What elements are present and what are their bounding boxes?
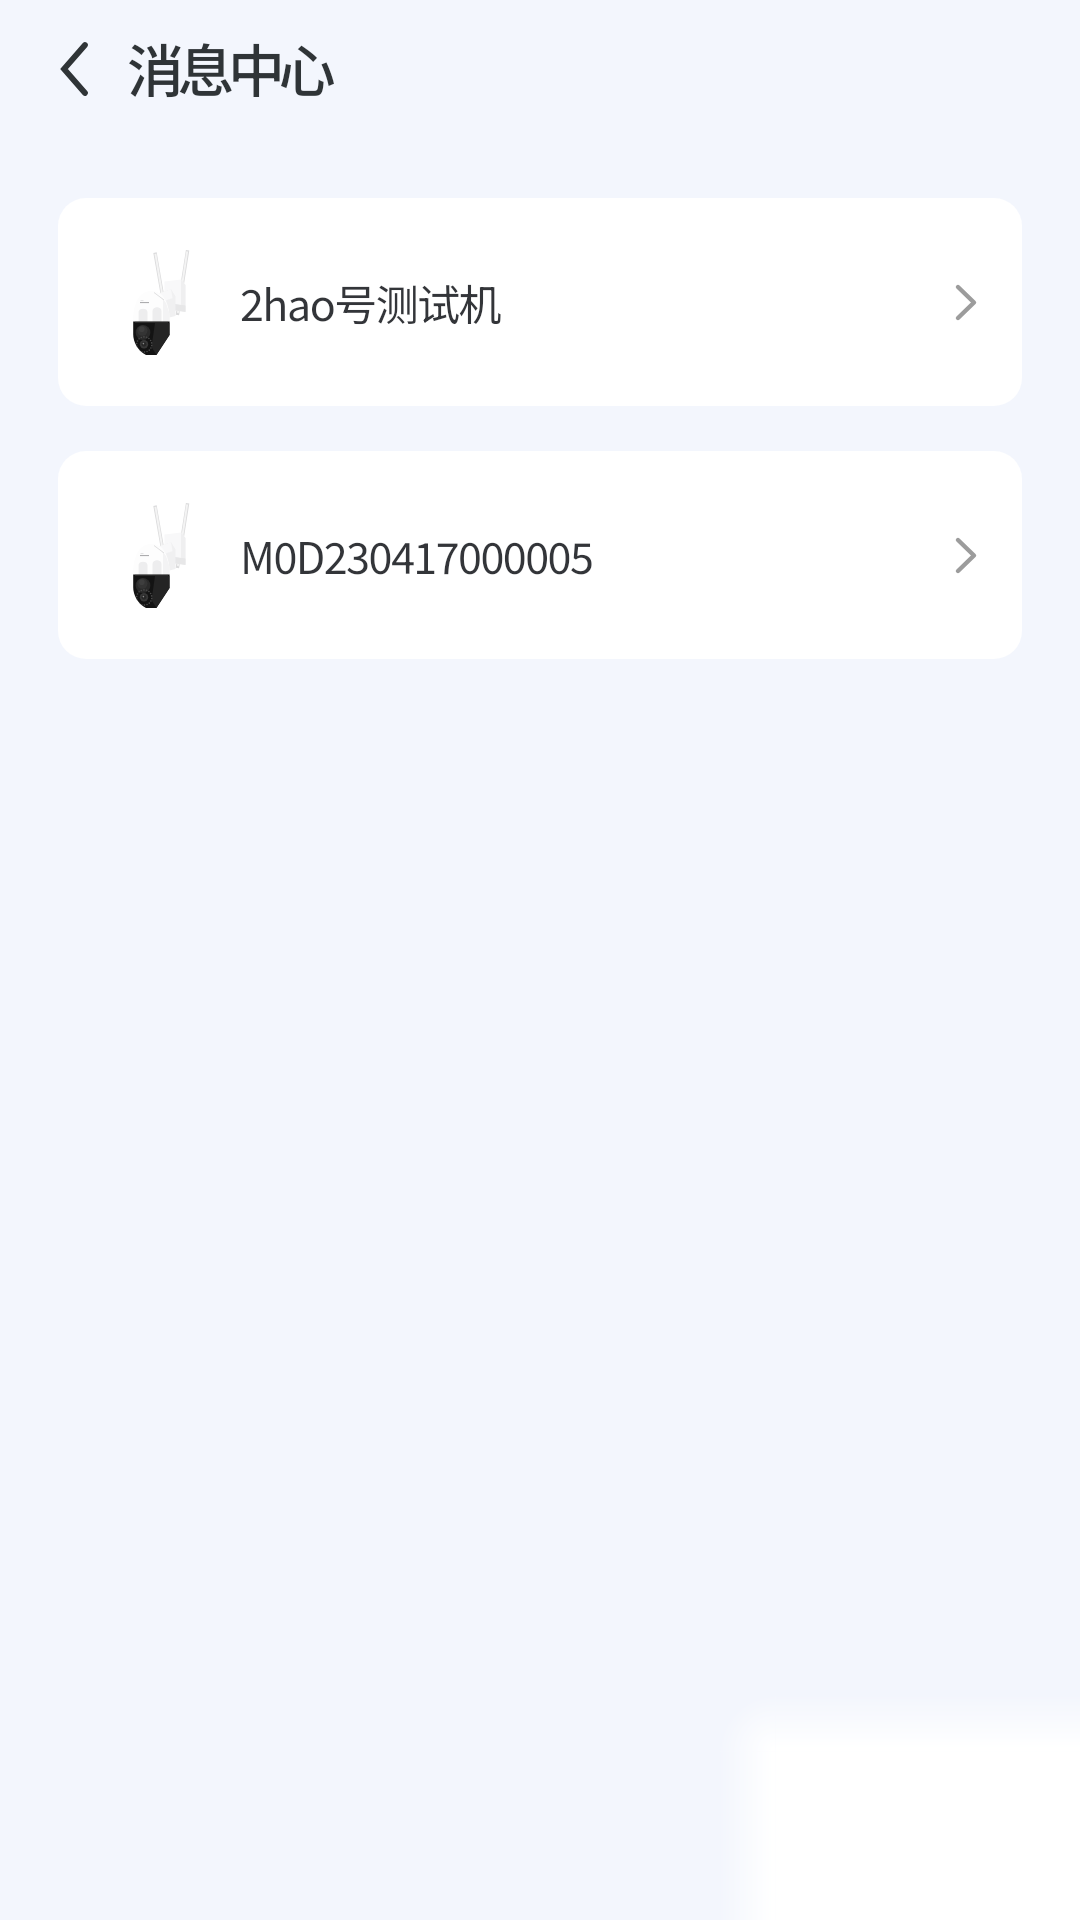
button[interactable]: 2hao号测试机 xyxy=(58,198,1022,406)
button[interactable]: Back xyxy=(26,21,122,117)
button[interactable]: M0D230417000005 xyxy=(58,451,1022,659)
staticText: 消息中心 xyxy=(127,26,329,109)
staticText: M0D230417000005 xyxy=(240,524,593,586)
staticText: 2hao号测试机 xyxy=(240,271,501,333)
